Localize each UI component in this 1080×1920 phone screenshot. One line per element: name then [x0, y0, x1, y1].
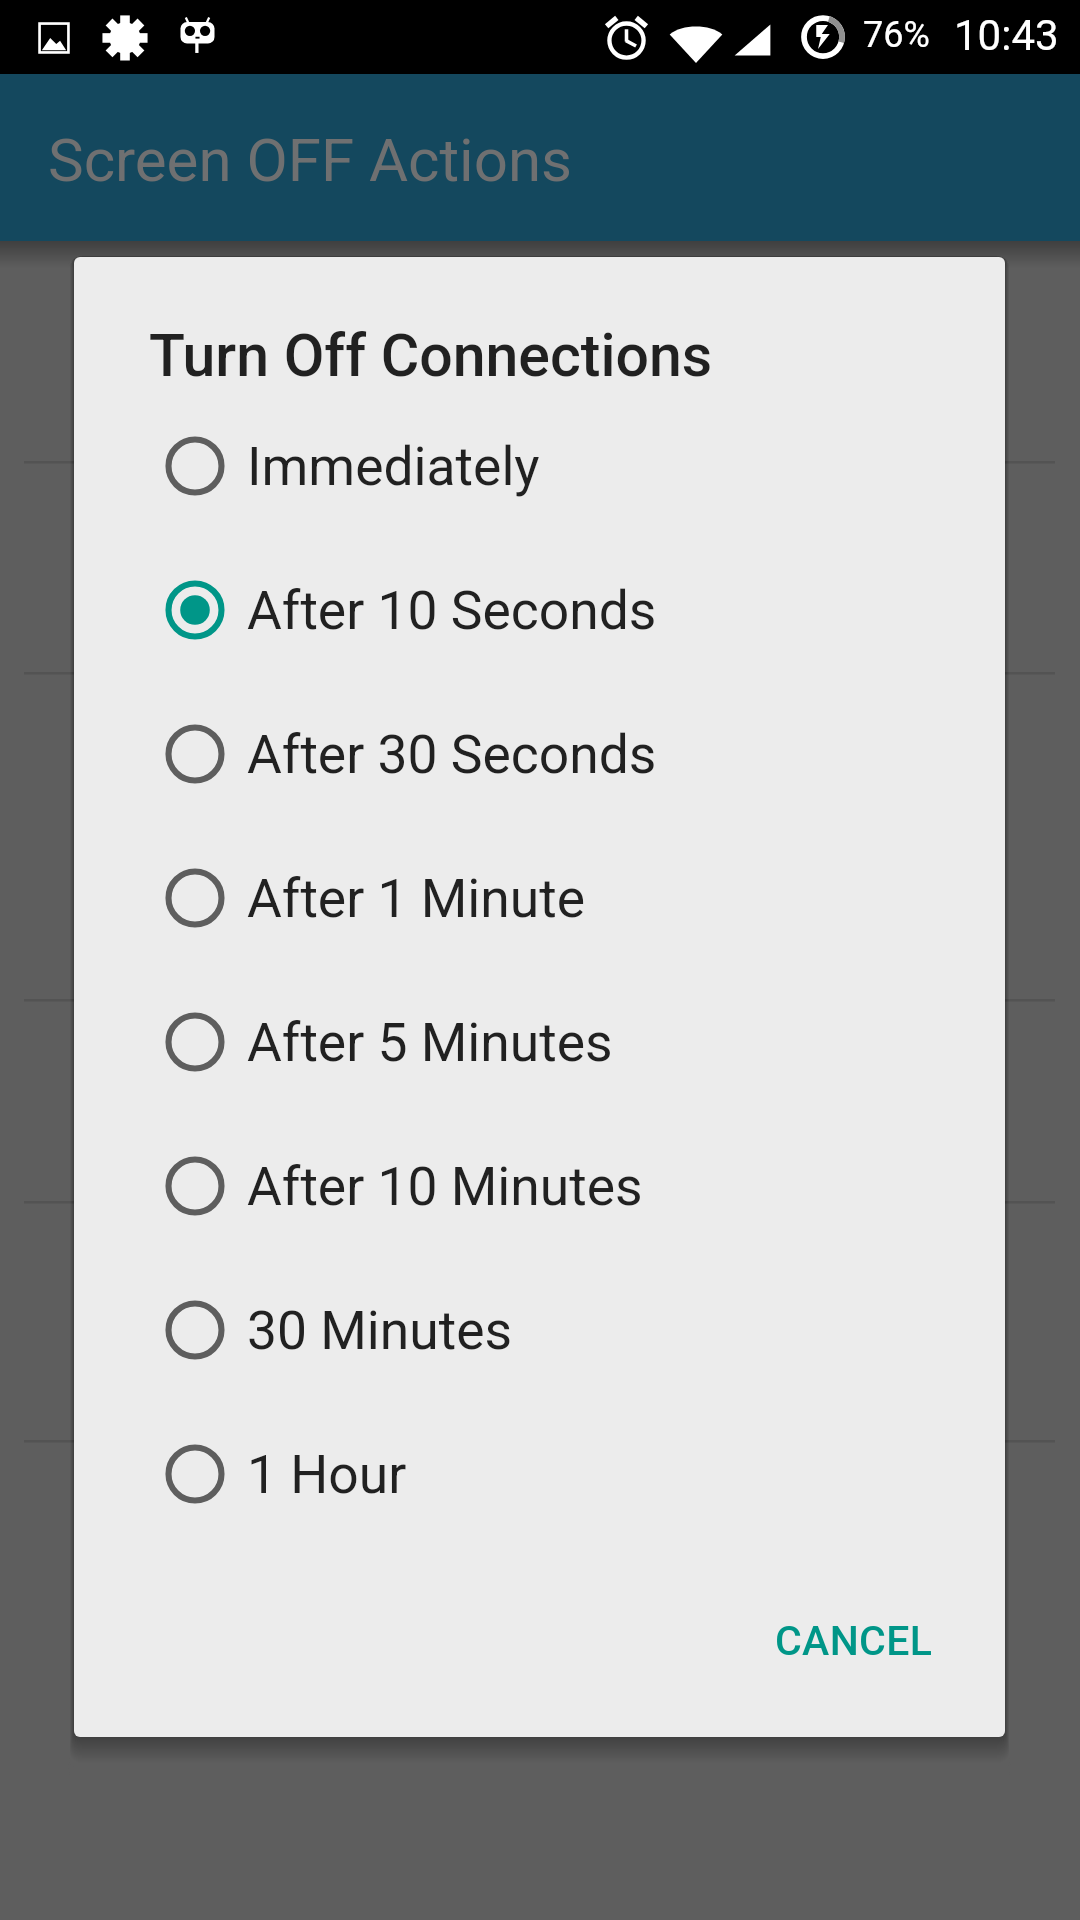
other: Alarm set: [601, 12, 652, 63]
button[interactable]: After 10 Minutes: [74, 1114, 1005, 1258]
staticText: Immediately: [247, 435, 540, 498]
other: Screenshot captured: [35, 19, 73, 57]
other: Wi-Fi signal full: [668, 16, 724, 72]
staticText: After 30 Seconds: [247, 723, 657, 786]
staticText: After 5 Minutes: [247, 1011, 613, 1074]
other: Settings: [101, 13, 149, 61]
other: CyanogenMod: [177, 14, 218, 55]
button[interactable]: After 5 Minutes: [74, 970, 1005, 1114]
staticText: 30 Minutes: [247, 1299, 513, 1362]
button[interactable]: 1 Hour: [74, 1402, 1005, 1546]
staticText: 10:43: [954, 11, 1059, 60]
other: Battery charging: [798, 12, 848, 62]
staticText: CANCEL: [775, 1617, 933, 1665]
staticText: 76%: [863, 14, 930, 56]
other: Mobile signal: [729, 16, 776, 63]
button[interactable]: After 1 Minute: [74, 826, 1005, 970]
button[interactable]: Immediately: [74, 394, 1005, 538]
button[interactable]: Screen OFF Actions: [48, 125, 573, 195]
staticText: Screen OFF Actions: [48, 125, 573, 195]
staticText: After 10 Seconds: [247, 579, 657, 642]
staticText: After 10 Minutes: [247, 1155, 643, 1218]
button[interactable]: 30 Minutes: [74, 1258, 1005, 1402]
button[interactable]: After 10 Seconds: [74, 538, 1005, 682]
button[interactable]: CANCEL: [743, 1595, 965, 1687]
button[interactable]: After 30 Seconds: [74, 682, 1005, 826]
staticText: Turn Off Connections: [149, 321, 713, 390]
staticText: After 1 Minute: [247, 867, 586, 930]
staticText: 1 Hour: [247, 1443, 407, 1506]
